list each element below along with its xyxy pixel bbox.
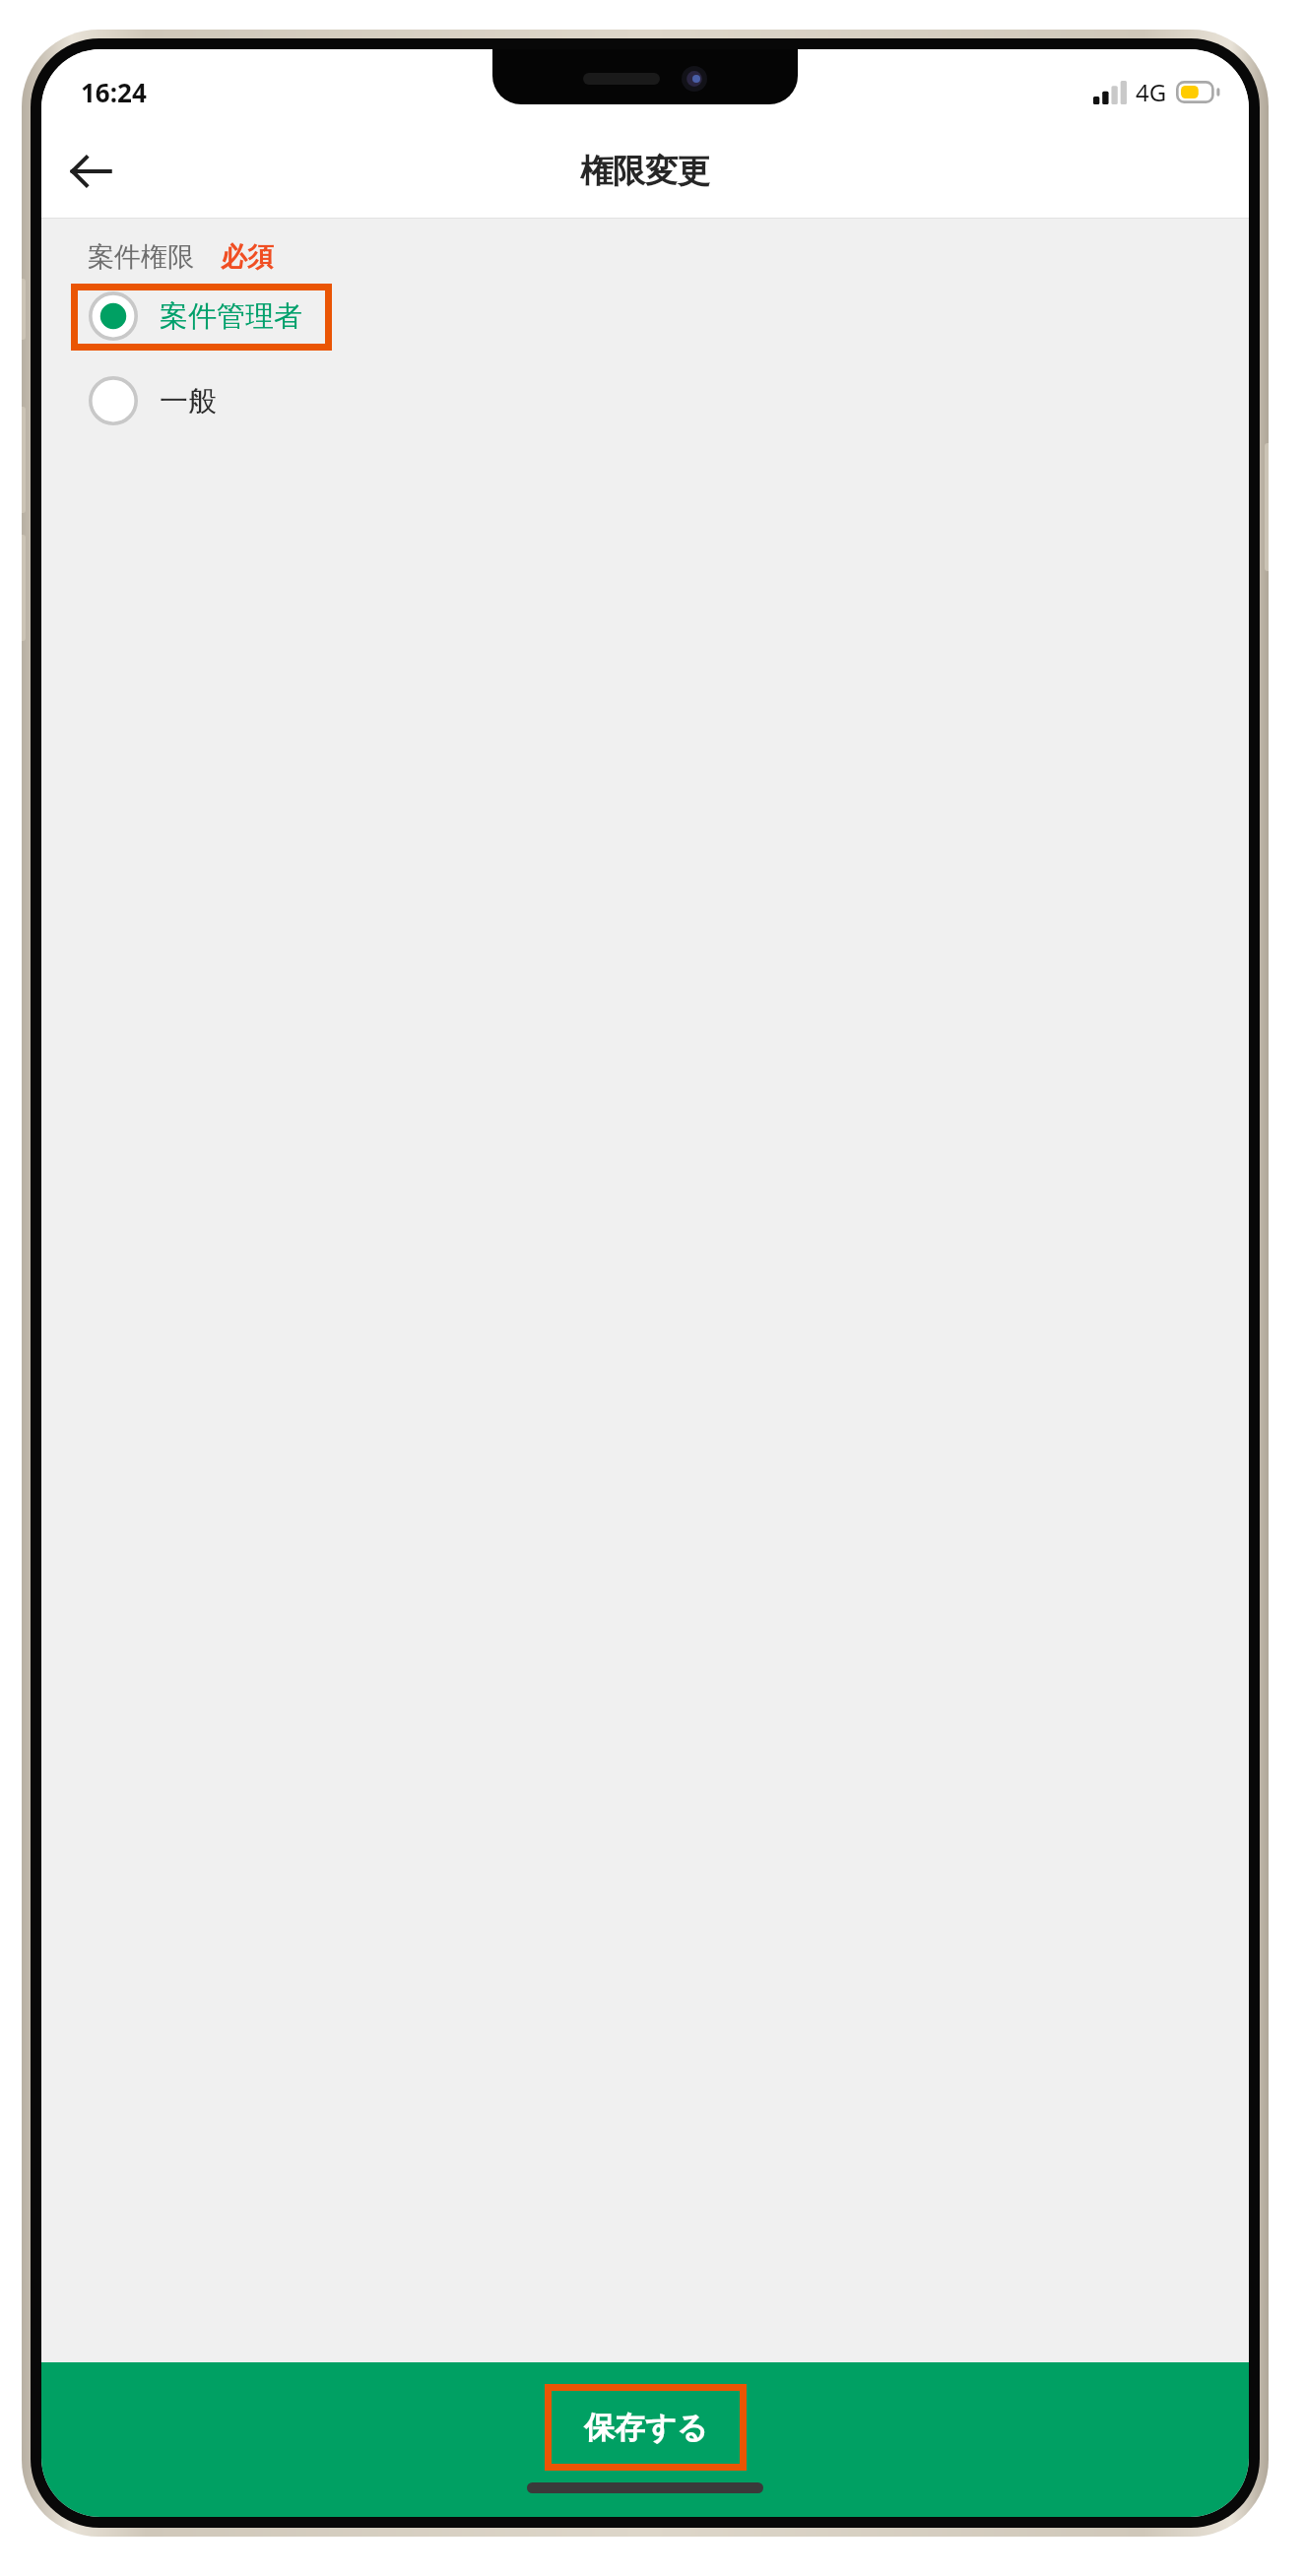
staticText: 必須 xyxy=(221,240,274,274)
button[interactable]: 戻る xyxy=(55,136,126,207)
button[interactable]: 保存する xyxy=(41,2362,1249,2517)
button[interactable]: 案件管理者 xyxy=(79,284,312,349)
staticText: 権限変更 xyxy=(580,151,710,192)
staticText: 一般 xyxy=(160,383,217,419)
staticText: 4G xyxy=(1136,76,1167,108)
staticText: 案件権限 xyxy=(88,240,194,274)
staticText: 案件管理者 xyxy=(160,298,302,335)
staticText: 16:24 xyxy=(81,75,147,109)
staticText: 保存する xyxy=(584,2409,708,2447)
button[interactable]: 一般 xyxy=(79,368,227,433)
